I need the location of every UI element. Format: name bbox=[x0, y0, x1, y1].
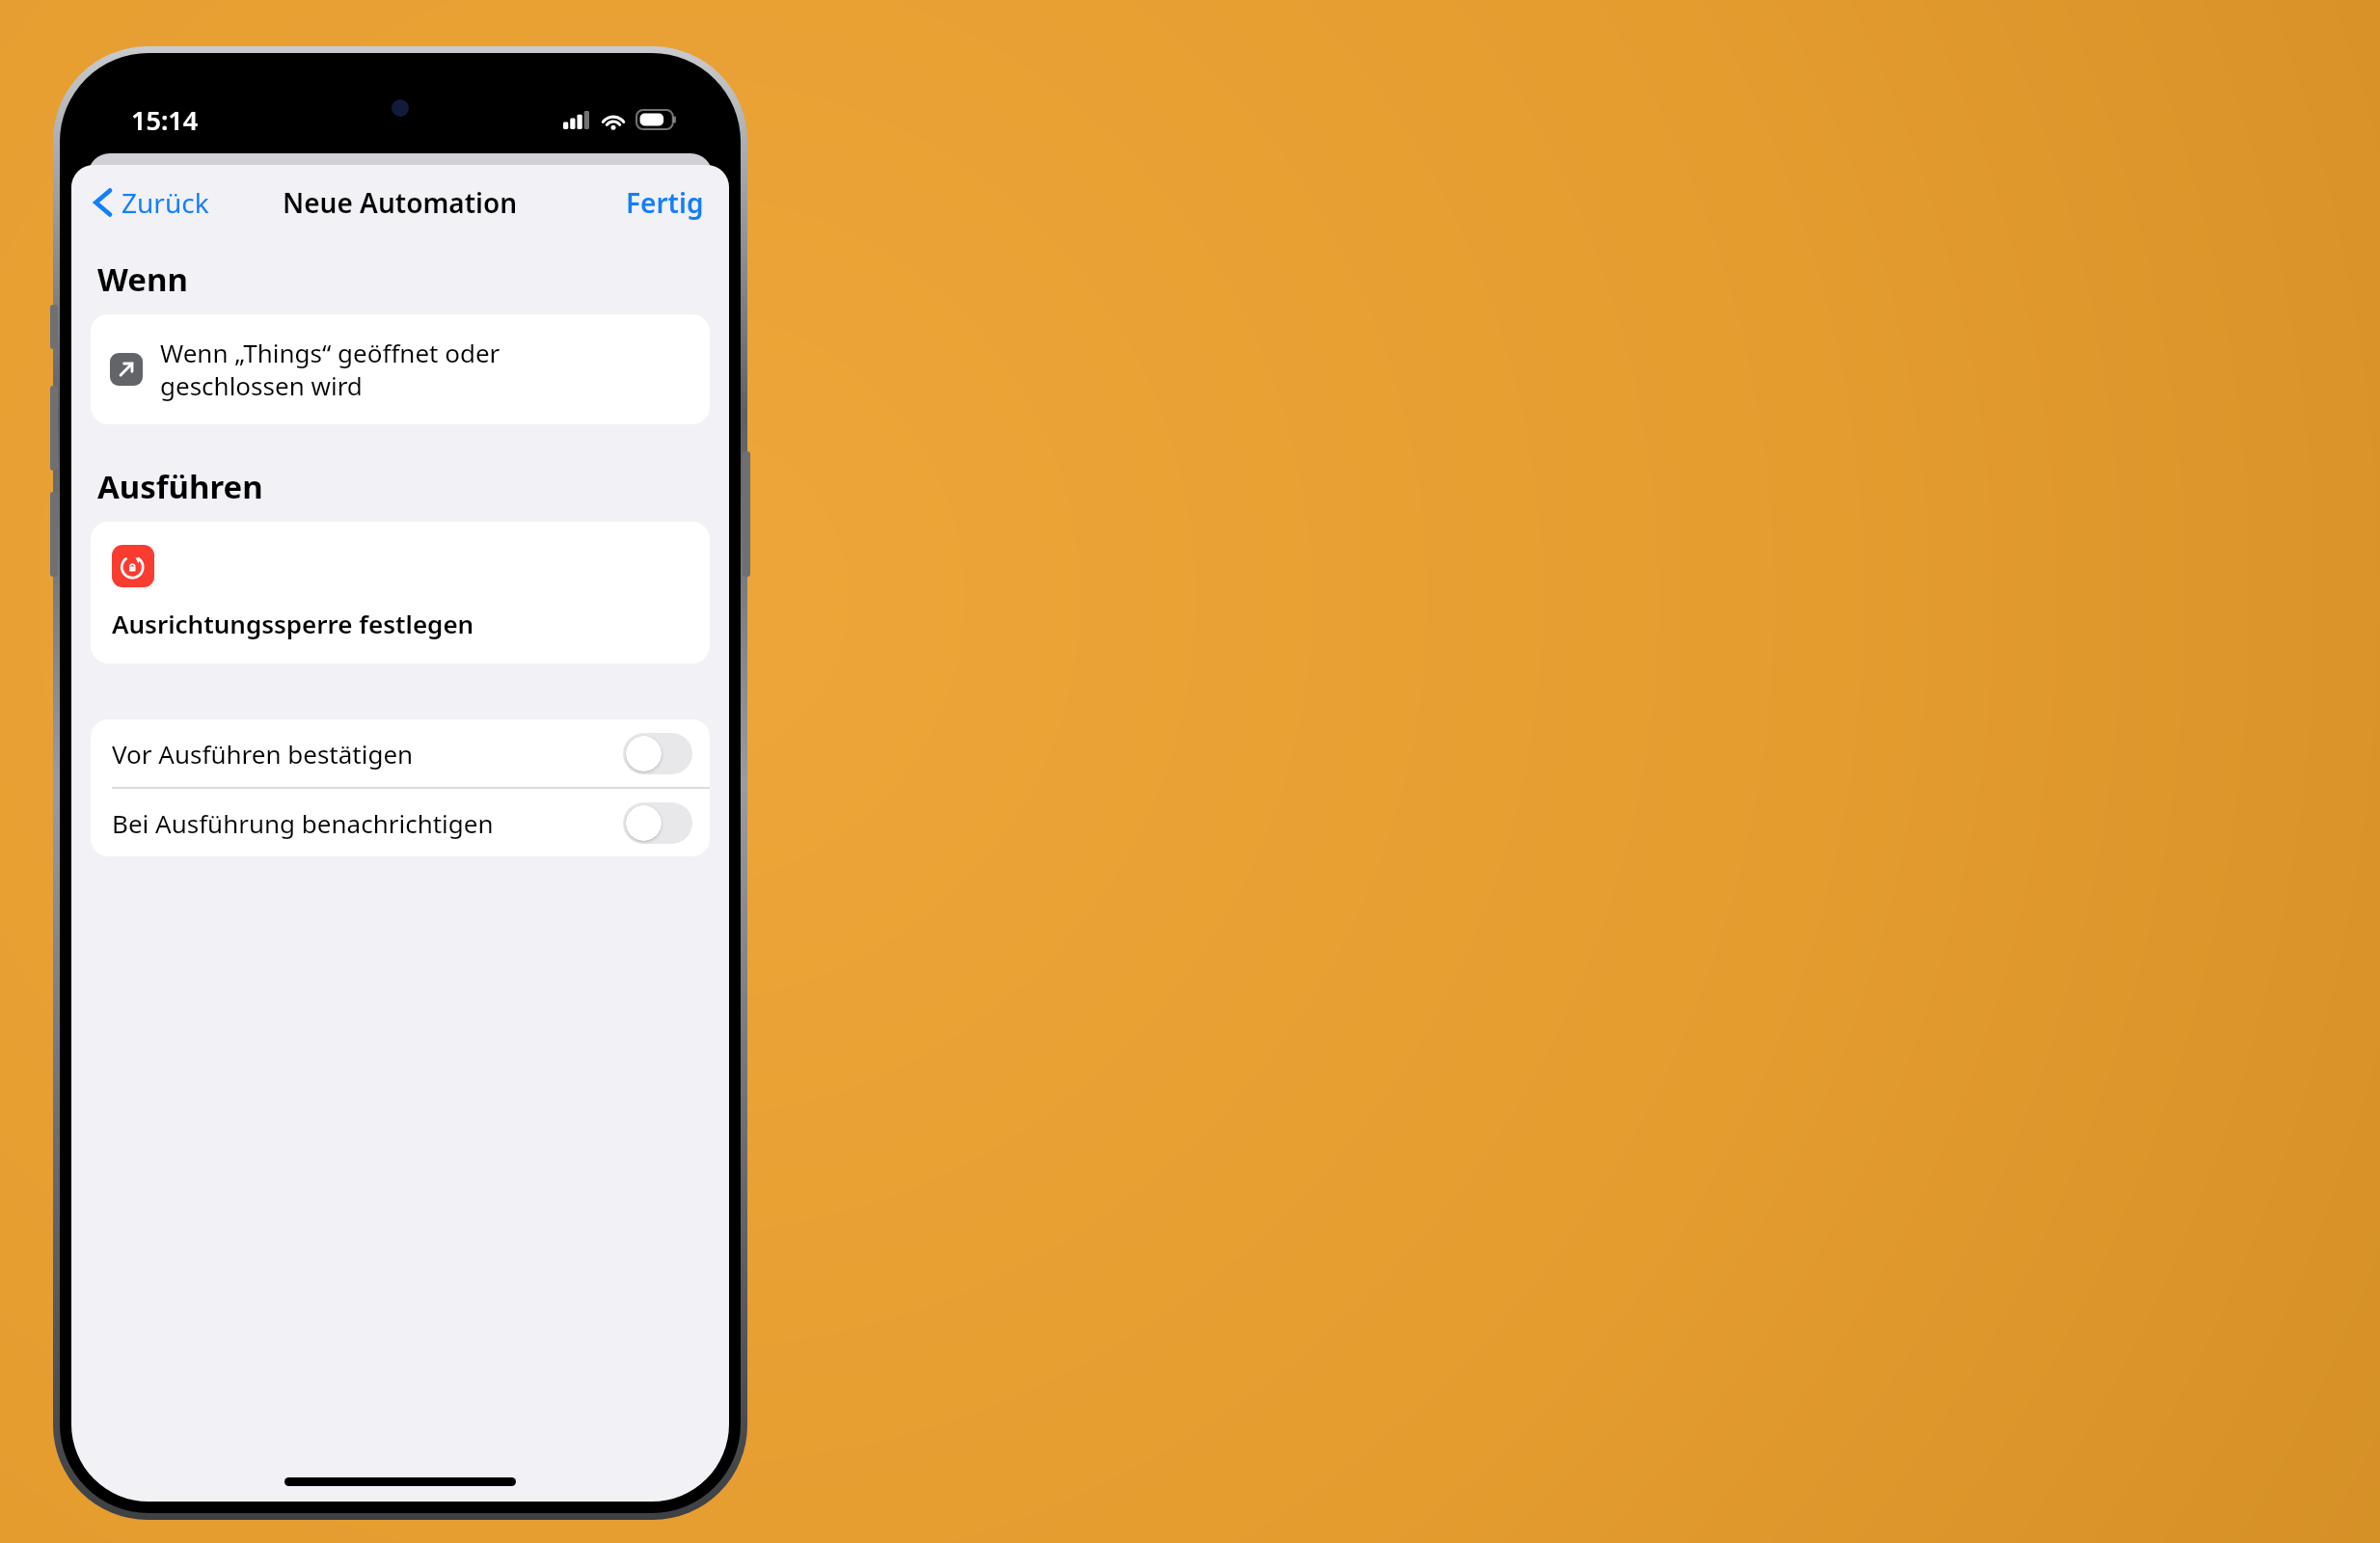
button[interactable]: Ausrichtungssperre festlegen bbox=[91, 522, 710, 663]
staticText: Fertig bbox=[626, 184, 704, 221]
button[interactable]: Toggle bbox=[623, 733, 692, 774]
button[interactable]: Bei Ausführung benachrichtigen bbox=[91, 789, 710, 856]
button[interactable]: Fertig bbox=[618, 176, 712, 229]
staticText: Wenn „Things“ geöffnet oder geschlossen … bbox=[160, 336, 500, 403]
button[interactable]: Vor Ausführen bestätigen bbox=[91, 719, 710, 787]
button[interactable]: Wenn „Things“ geöffnet oder geschlossen … bbox=[91, 314, 710, 424]
staticText: Neue Automation bbox=[283, 184, 518, 221]
button[interactable]: Toggle bbox=[623, 802, 692, 844]
staticText: 15:14 bbox=[131, 102, 199, 138]
staticText: Zurück bbox=[122, 184, 209, 221]
staticText: Bei Ausführung benachrichtigen bbox=[112, 806, 623, 840]
staticText: Wenn bbox=[97, 257, 188, 301]
staticText: Ausführen bbox=[97, 465, 263, 508]
button[interactable]: Zurück bbox=[85, 176, 217, 229]
staticText: Ausrichtungssperre festlegen bbox=[112, 607, 474, 640]
staticText: Vor Ausführen bestätigen bbox=[112, 737, 623, 771]
